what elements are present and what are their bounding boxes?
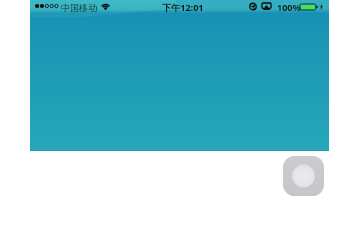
button[interactable]: AssistiveTouch (283, 156, 324, 196)
staticText: 100% (277, 1, 301, 13)
staticText: 中国移动 (61, 2, 97, 13)
staticText: 下午12:01 (162, 1, 204, 13)
